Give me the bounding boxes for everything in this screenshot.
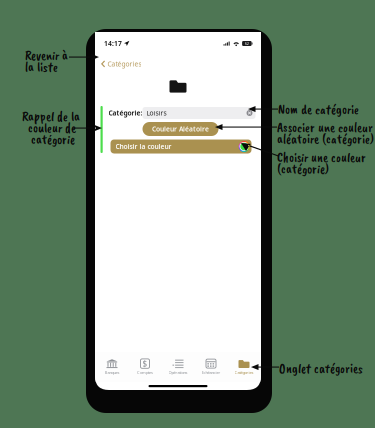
button[interactable]: Catégories bbox=[95, 57, 147, 71]
button[interactable]: Opérations bbox=[161, 356, 194, 378]
staticText: 62 bbox=[245, 41, 249, 46]
button[interactable]: Catégories bbox=[227, 356, 260, 378]
staticText: Onglet catégories bbox=[279, 360, 363, 377]
staticText: Catégories bbox=[234, 370, 253, 375]
button[interactable]: Banques bbox=[95, 356, 128, 378]
button[interactable]: $ bbox=[128, 356, 161, 378]
button[interactable]: Choisir la couleur bbox=[110, 139, 251, 153]
staticText: couleur de bbox=[28, 119, 76, 136]
staticText: Choisir une couleur bbox=[277, 149, 366, 166]
button[interactable]: Echéancier bbox=[194, 356, 227, 378]
staticText: Nom de catégorie bbox=[278, 101, 359, 118]
staticText: 14:17 bbox=[104, 39, 122, 48]
staticText: catégorie bbox=[31, 131, 75, 148]
staticText: Rappel de la bbox=[22, 108, 80, 125]
staticText: Banques bbox=[104, 370, 119, 375]
staticText: aléatoire (catégorie) bbox=[277, 130, 374, 147]
staticText: Choisir la couleur bbox=[115, 142, 171, 151]
button[interactable]: Couleur Aléatoire bbox=[142, 122, 218, 136]
staticText: $ bbox=[142, 358, 147, 369]
button[interactable]: Effacer bbox=[245, 108, 254, 117]
staticText: Revenir à bbox=[25, 47, 68, 64]
staticText: Couleur Aléatoire bbox=[152, 125, 209, 133]
staticText: Echéancier bbox=[201, 370, 220, 375]
staticText: Comptes bbox=[137, 370, 153, 375]
staticText: Catégories bbox=[107, 60, 141, 68]
staticText: Associer une couleur bbox=[277, 119, 373, 136]
staticText: la liste bbox=[25, 58, 58, 75]
staticText: Catégorie: bbox=[108, 108, 142, 117]
staticText: Loisirs bbox=[146, 109, 166, 117]
staticText: (catégorie) bbox=[277, 160, 329, 177]
staticText: Opérations bbox=[168, 370, 187, 375]
